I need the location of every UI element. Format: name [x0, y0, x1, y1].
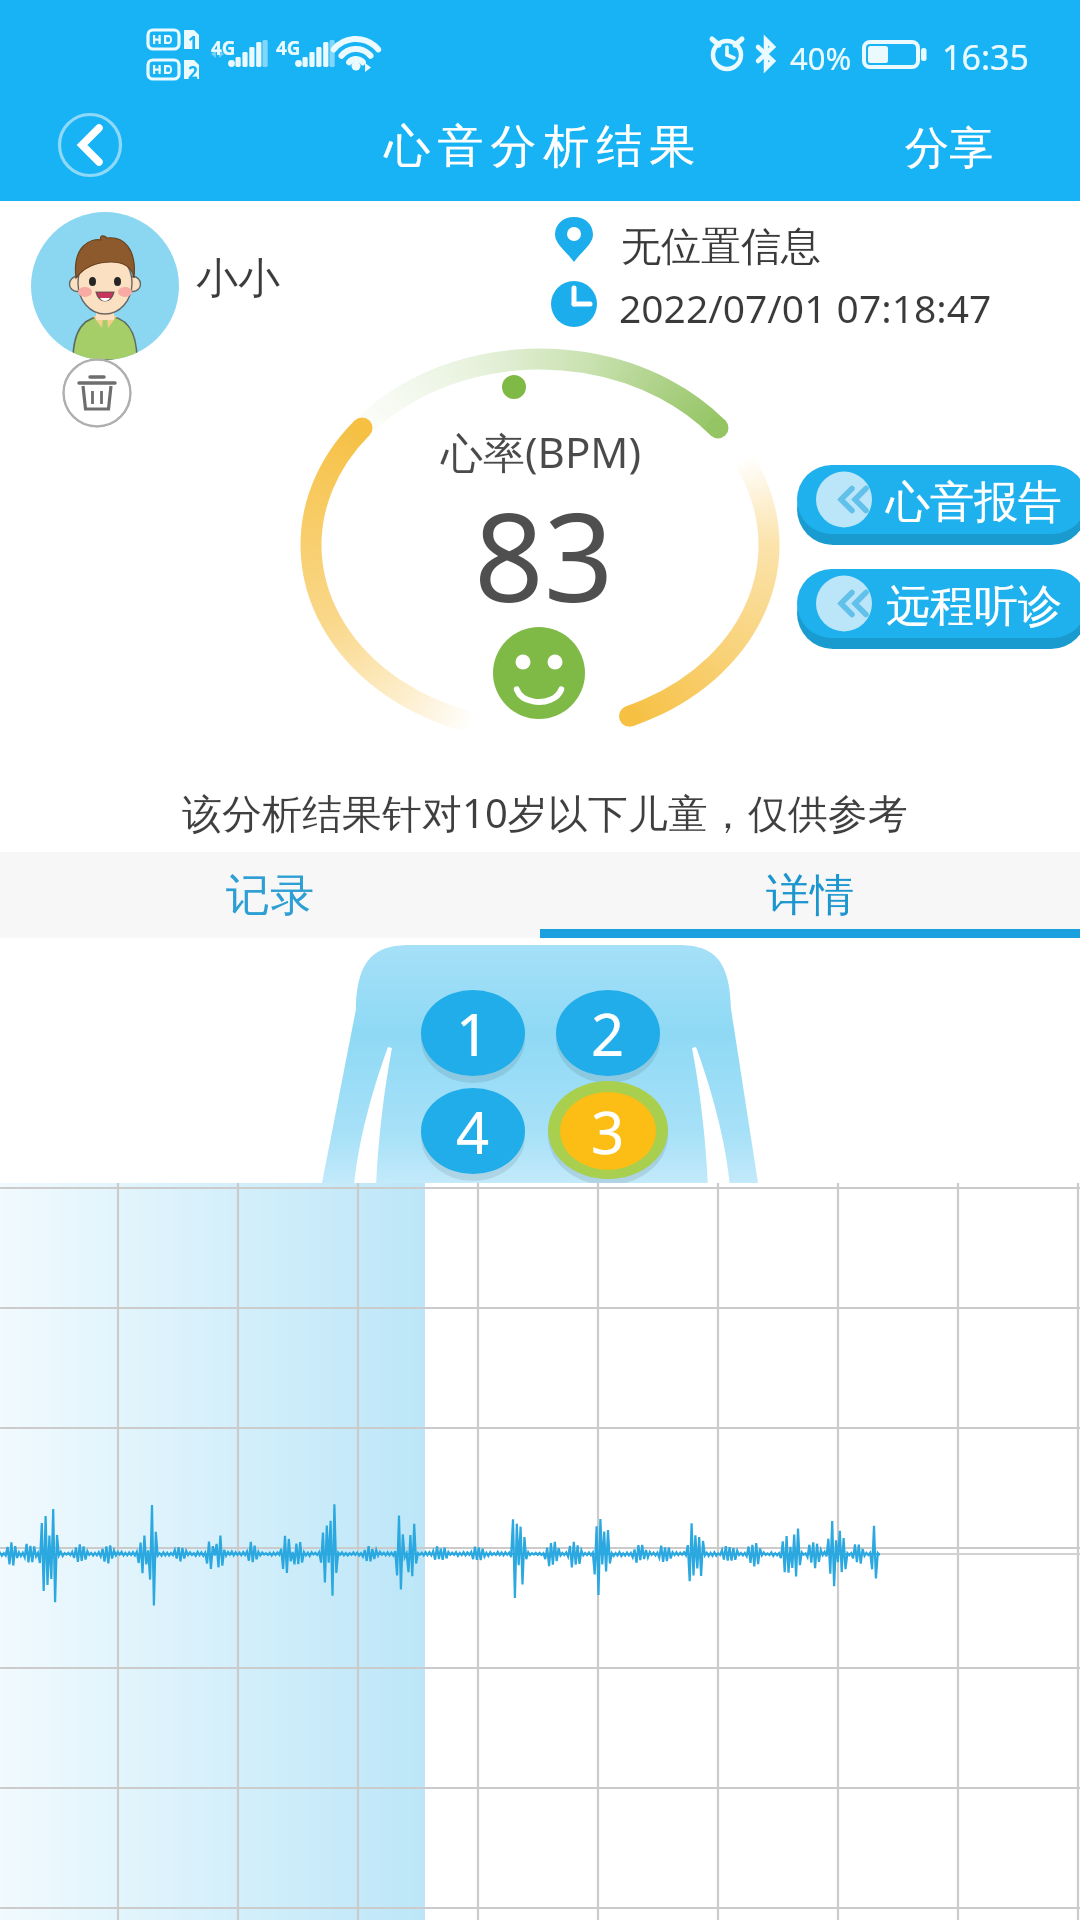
staticText: 小小 — [196, 253, 280, 306]
staticText: 无位置信息 — [621, 221, 821, 271]
staticText: 40% — [790, 37, 852, 79]
button[interactable]: 4 — [418, 1086, 528, 1176]
staticText: 远程听诊 — [886, 579, 1062, 634]
button[interactable]: Delete — [62, 358, 132, 428]
staticText: 分享 — [905, 121, 993, 176]
button[interactable]: 2 — [553, 988, 663, 1078]
staticText: 1 — [456, 994, 490, 1073]
staticText: 16:35 — [942, 34, 1029, 80]
staticText: 2022/07/01 07:18:47 — [619, 281, 992, 334]
staticText: 心音分析结果 — [381, 118, 699, 176]
button[interactable]: 远程听诊 — [797, 569, 1080, 649]
staticText: 详情 — [766, 868, 854, 923]
staticText: 2 — [188, 61, 198, 84]
staticText: 1 — [188, 31, 198, 54]
staticText: 2 — [591, 994, 625, 1073]
staticText: 4G — [276, 35, 301, 61]
staticText: 记录 — [226, 868, 314, 923]
button[interactable] — [31, 212, 179, 360]
button[interactable]: 3 — [553, 1086, 663, 1176]
staticText: 该分析结果针对10岁以下儿童，仅供参考 — [182, 785, 908, 840]
button[interactable]: 记录 — [0, 852, 540, 938]
button[interactable]: 详情 — [540, 852, 1080, 938]
staticText: 心率(BPM) — [441, 423, 642, 480]
staticText: 83 — [474, 472, 614, 638]
staticText: 心音报告 — [886, 475, 1062, 530]
button[interactable]: 心音报告 — [797, 465, 1080, 545]
staticText: 3 — [591, 1092, 625, 1171]
button[interactable]: 1 — [418, 988, 528, 1078]
staticText: 4 — [456, 1092, 490, 1171]
button[interactable]: 分享 — [885, 113, 1013, 184]
staticText: 4G — [211, 35, 236, 61]
button[interactable]: Back — [57, 112, 123, 178]
